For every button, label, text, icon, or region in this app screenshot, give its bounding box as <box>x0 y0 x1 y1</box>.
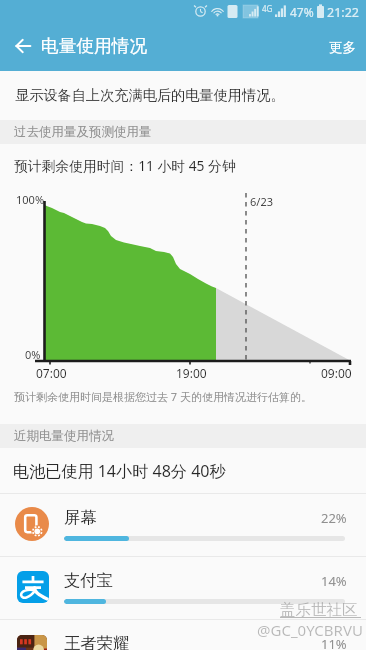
button[interactable]: 王者荣耀 <box>0 619 366 650</box>
staticText: 过去使用量及预测使用量 <box>14 124 152 140</box>
staticText: 6/23 <box>250 194 273 209</box>
staticText: 14% <box>321 572 347 590</box>
staticText: @GC_0YCBRVU <box>257 620 363 640</box>
staticText: 预计剩余使用时间：11 小时 45 分钟 <box>14 156 236 175</box>
staticText: 21:22 <box>327 4 359 21</box>
staticText: 屏幕 <box>64 507 97 528</box>
staticText: 100% <box>16 192 45 207</box>
staticText: 0% <box>25 347 41 362</box>
staticText: 支付宝 <box>64 570 113 591</box>
staticText: 更多 <box>329 39 356 56</box>
button[interactable]: 屏幕 <box>0 493 366 556</box>
staticText: 预计剩余使用时间是根据您过去 7 天的使用情况进行估算的。 <box>14 389 313 404</box>
staticText: 盖乐世社区 <box>280 600 358 620</box>
staticText: 22% <box>321 509 347 527</box>
staticText: 电量使用情况 <box>41 35 148 57</box>
staticText: 09:00 <box>321 365 352 381</box>
staticText: 近期电量使用情况 <box>14 428 114 444</box>
button[interactable]: 更多 <box>318 24 366 70</box>
staticText: 07:00 <box>36 365 67 381</box>
staticText: 4G <box>262 3 273 14</box>
button[interactable]: 支付宝 <box>0 556 366 619</box>
staticText: 47% <box>290 4 314 20</box>
staticText: 11% <box>321 635 347 650</box>
staticText: 显示设备自上次充满电后的电量使用情况。 <box>15 86 285 104</box>
staticText: 王者荣耀 <box>64 633 130 650</box>
staticText: 电池已使用 14小时 48分 40秒 <box>13 460 226 482</box>
button[interactable]: Back <box>0 22 48 70</box>
staticText: 19:00 <box>176 365 207 381</box>
